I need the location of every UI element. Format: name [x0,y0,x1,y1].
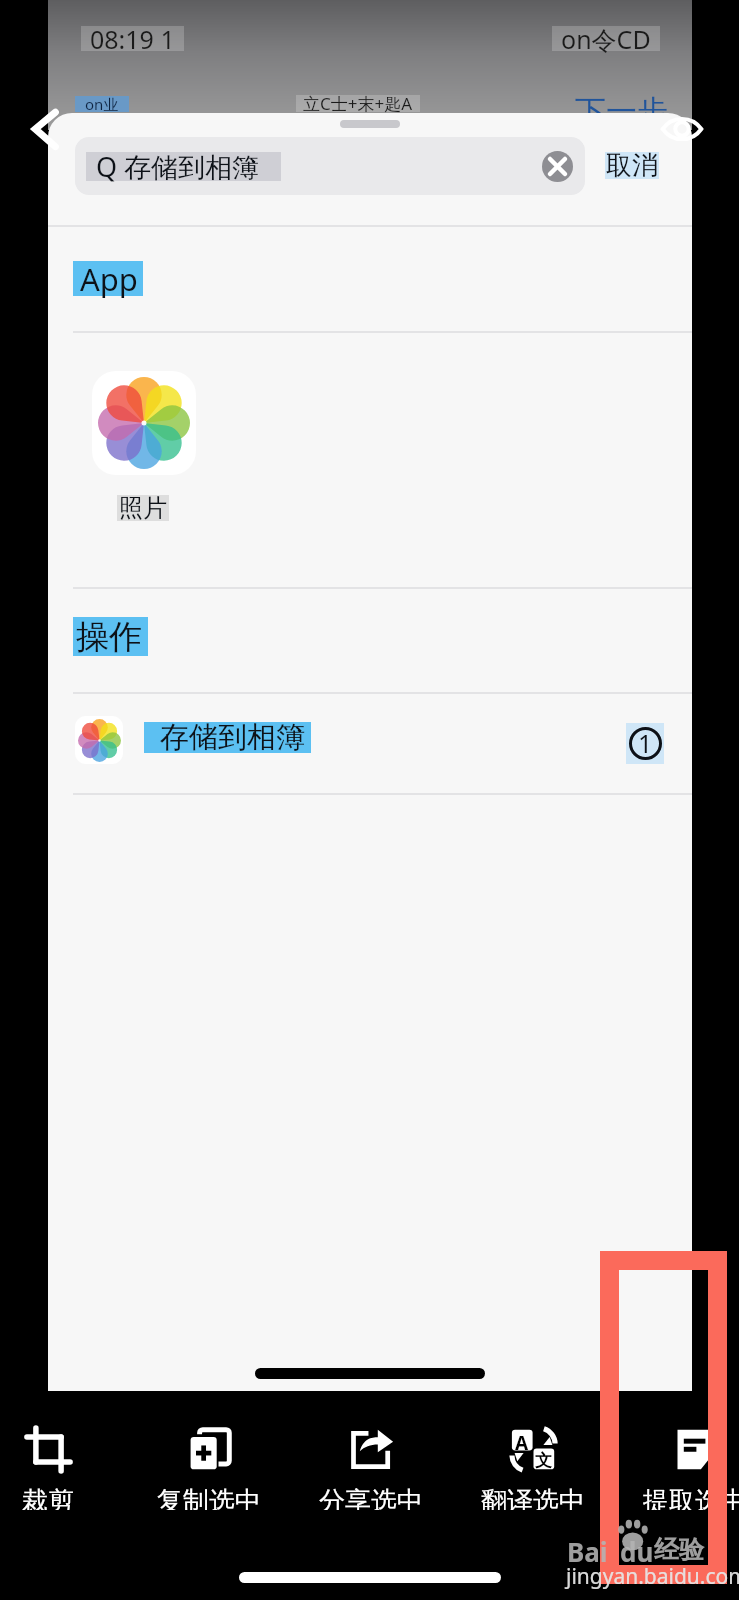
staticText: 翻译选中 [481,1485,585,1510]
staticText: Bai [567,1534,608,1569]
button[interactable] [92,371,196,475]
staticText: on令CD [561,22,651,56]
staticText: 操作 [76,616,142,658]
staticText: 分享选中 [319,1485,423,1510]
button[interactable]: Preview [661,108,703,150]
button[interactable]: Translate selection [452,1400,613,1510]
staticText: 存储到相簿 [160,719,305,756]
button[interactable]: Clear search [542,151,573,182]
button[interactable]: Extract selection [614,1400,739,1510]
staticText: 文 [535,1450,552,1471]
staticText: du [620,1534,654,1569]
staticText: 1 [638,726,653,760]
staticText: 下一步 [575,92,668,131]
staticText: 经验 [654,1534,704,1565]
staticText: 裁剪 [22,1485,74,1510]
button[interactable]: Share selection [290,1400,451,1510]
staticText: Q 存储到相簿 [96,148,281,185]
button[interactable]: Back [26,108,68,150]
staticText: jingyan.baidu.com [566,1562,739,1591]
button[interactable]: 存储到相簿 [48,694,692,795]
staticText: 08:19 1 [90,22,175,56]
button[interactable]: Crop [0,1400,128,1510]
staticText: 取消 [606,149,658,182]
button[interactable]: Q 存储到相簿 [75,137,585,195]
staticText: 立C士+末+匙A [303,92,413,115]
staticText: 提取选中 [643,1485,739,1510]
staticText: 复制选中 [157,1485,261,1510]
staticText: A [515,1430,529,1456]
staticText: App [80,258,138,300]
button[interactable]: 取消 [605,152,659,179]
button[interactable]: Copy selection [128,1400,289,1510]
staticText: on业 [85,94,119,114]
staticText: 照片 [119,493,167,523]
